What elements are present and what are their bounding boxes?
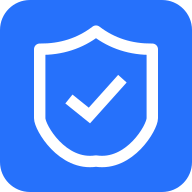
- button[interactable]: Security shield app icon: [0, 0, 192, 192]
